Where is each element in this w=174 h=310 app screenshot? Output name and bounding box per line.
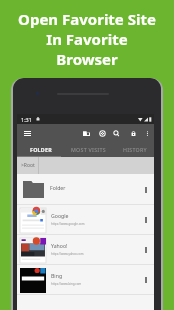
button[interactable]: Search <box>109 124 123 142</box>
button[interactable]: Yahoo! <box>17 235 154 265</box>
staticText: FOLDER <box>30 146 52 153</box>
button[interactable]: HISTORY <box>112 142 158 157</box>
button[interactable]: Folder <box>17 174 154 205</box>
button[interactable]: More options <box>140 124 154 142</box>
button[interactable]: Web page <box>95 124 109 142</box>
staticText: 1:31 <box>21 116 32 123</box>
staticText: https://www.google.com <box>51 222 85 226</box>
button[interactable]: Bing <box>17 265 154 295</box>
button[interactable]: FOLDER <box>19 142 63 157</box>
staticText: https://www.bing.com <box>51 282 82 286</box>
button[interactable]: More options <box>137 270 154 290</box>
button[interactable]: >Root <box>17 157 38 174</box>
staticText: Bing <box>51 272 63 279</box>
staticText: Yahoo! <box>51 242 68 249</box>
staticText: Folder <box>50 184 66 191</box>
staticText: In Favorite <box>46 29 128 49</box>
button[interactable]: More options <box>137 210 154 230</box>
button[interactable]: MOST VISITS <box>65 142 111 157</box>
staticText: MOST VISITS <box>71 146 106 153</box>
staticText: Browser <box>56 49 118 69</box>
button[interactable]: Bookmarks <box>79 124 93 142</box>
button[interactable]: More options <box>137 180 154 200</box>
staticText: HISTORY <box>123 146 147 153</box>
button[interactable]: Menu <box>17 124 37 142</box>
button[interactable]: Google <box>17 205 154 235</box>
staticText: >Root <box>21 162 35 169</box>
staticText: Google <box>51 212 69 219</box>
button[interactable]: More options <box>137 240 154 260</box>
staticText: https://www.yahoo.com <box>51 252 84 256</box>
staticText: Open Favorite Site <box>18 9 156 29</box>
button[interactable]: Secure site <box>126 124 140 142</box>
